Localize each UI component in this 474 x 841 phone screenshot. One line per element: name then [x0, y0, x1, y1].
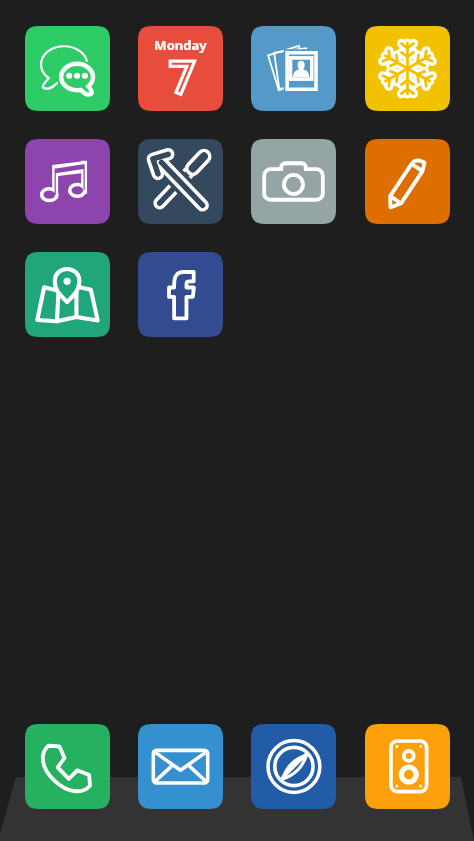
button[interactable]: Browser	[251, 724, 336, 809]
button[interactable]: Messages	[25, 26, 110, 111]
button[interactable]: Music	[25, 139, 110, 224]
staticText: Monday	[154, 36, 207, 54]
button[interactable]: Settings	[138, 139, 223, 224]
button[interactable]: Weather	[365, 26, 450, 111]
button[interactable]: Speaker	[365, 724, 450, 809]
button[interactable]: Camera	[251, 139, 336, 224]
button[interactable]: Notes	[365, 139, 450, 224]
button[interactable]: Mail	[138, 724, 223, 809]
button[interactable]: Calendar	[138, 26, 223, 111]
button[interactable]: Maps	[25, 252, 110, 337]
button[interactable]: Photos	[251, 26, 336, 111]
button[interactable]: Facebook	[138, 252, 223, 337]
button[interactable]: Phone	[25, 724, 110, 809]
